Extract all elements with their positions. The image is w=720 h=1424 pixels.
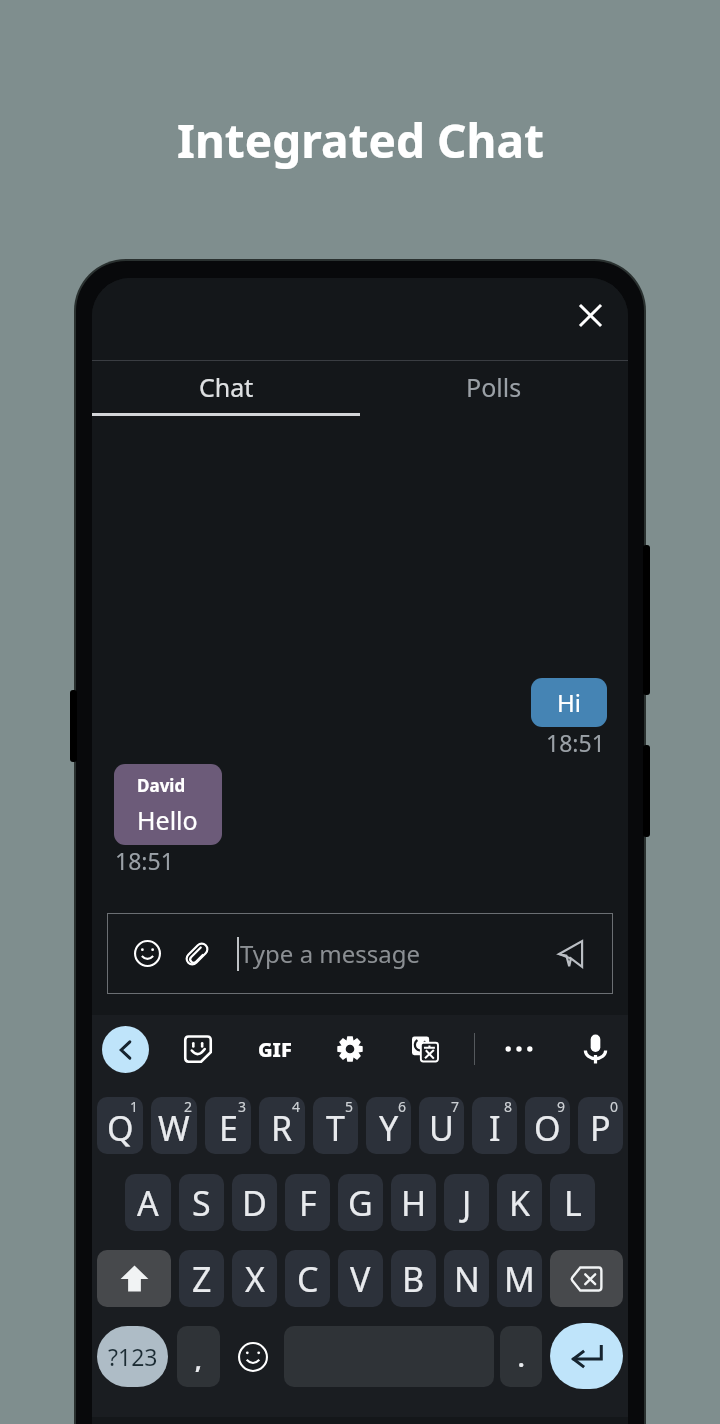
button[interactable]: X — [232, 1250, 277, 1307]
button[interactable]: U — [419, 1097, 464, 1154]
staticText: D — [242, 1180, 267, 1226]
button[interactable]: More options — [493, 1023, 545, 1075]
button[interactable]: R — [259, 1097, 305, 1154]
button[interactable]: S — [179, 1174, 224, 1231]
staticText: 8 — [504, 1097, 513, 1116]
staticText: 9 — [557, 1097, 566, 1116]
button[interactable]: B — [391, 1250, 436, 1307]
button[interactable]: Shift — [97, 1250, 171, 1307]
staticText: S — [192, 1180, 211, 1226]
button[interactable]: Translate — [399, 1023, 451, 1075]
button[interactable]: Backspace — [550, 1250, 623, 1307]
button[interactable]: Stickers — [172, 1023, 224, 1075]
staticText: Type a message — [240, 937, 421, 970]
staticText: J — [462, 1180, 472, 1226]
button[interactable]: Z — [179, 1250, 224, 1307]
staticText: U — [429, 1105, 454, 1151]
staticText: ?123 — [108, 1341, 158, 1372]
button[interactable]: H — [391, 1174, 436, 1231]
staticText: 1 — [130, 1097, 139, 1116]
staticText: 0 — [610, 1097, 619, 1116]
button[interactable]: Close — [566, 291, 614, 339]
button[interactable]: Back — [99, 1023, 151, 1075]
button[interactable]: J — [444, 1174, 489, 1231]
staticText: 18:51 — [546, 727, 605, 758]
button[interactable]: Enter — [550, 1323, 623, 1389]
staticText: GIF — [258, 1036, 292, 1063]
button[interactable]: V — [338, 1250, 383, 1307]
button[interactable]: F — [285, 1174, 330, 1231]
staticText: Chat — [199, 370, 254, 404]
staticText: 4 — [292, 1097, 301, 1116]
button[interactable]: N — [444, 1250, 489, 1307]
staticText: 18:51 — [115, 845, 174, 876]
staticText: E — [219, 1105, 238, 1151]
staticText: P — [590, 1105, 611, 1151]
button[interactable]: C — [285, 1250, 330, 1307]
button[interactable]: ?123 — [97, 1326, 168, 1387]
staticText: H — [401, 1180, 427, 1226]
button[interactable]: Hi — [531, 678, 607, 727]
button[interactable]: L — [550, 1174, 595, 1231]
staticText: O — [534, 1105, 561, 1151]
staticText: X — [245, 1256, 265, 1302]
button[interactable]: Voice input — [569, 1023, 621, 1075]
button[interactable]: T — [313, 1097, 358, 1154]
button[interactable]: Settings — [324, 1023, 376, 1075]
staticText: 6 — [398, 1097, 407, 1116]
button[interactable]: . — [500, 1326, 542, 1387]
staticText: W — [158, 1105, 190, 1151]
staticText: I — [489, 1105, 501, 1151]
staticText: T — [326, 1105, 345, 1151]
button[interactable]: D — [232, 1174, 277, 1231]
staticText: Z — [192, 1256, 212, 1302]
staticText: N — [454, 1256, 480, 1302]
staticText: K — [509, 1180, 531, 1226]
staticText: B — [402, 1256, 425, 1302]
button[interactable]: I — [472, 1097, 517, 1154]
staticText: 2 — [184, 1097, 193, 1116]
staticText: , — [195, 1344, 202, 1375]
button[interactable]: Type a message — [107, 913, 613, 994]
button[interactable]: David — [114, 764, 222, 845]
button[interactable]: E — [205, 1097, 251, 1154]
staticText: 7 — [451, 1097, 460, 1116]
staticText: Y — [379, 1105, 399, 1151]
staticText: Polls — [466, 370, 522, 404]
button[interactable]: Polls — [360, 361, 628, 416]
button[interactable]: M — [497, 1250, 542, 1307]
staticText: David — [137, 774, 186, 797]
staticText: 3 — [238, 1097, 247, 1116]
button[interactable]: K — [497, 1174, 542, 1231]
staticText: M — [504, 1256, 535, 1302]
button[interactable]: O — [525, 1097, 570, 1154]
staticText: Hi — [557, 686, 581, 719]
button[interactable]: GIF — [249, 1023, 301, 1075]
button[interactable]: P — [578, 1097, 623, 1154]
button[interactable]: W — [151, 1097, 197, 1154]
staticText: F — [299, 1180, 317, 1226]
staticText: R — [271, 1105, 293, 1151]
staticText: . — [518, 1342, 525, 1373]
staticText: Hello — [137, 803, 198, 837]
button[interactable]: Y — [366, 1097, 411, 1154]
button[interactable]: Emoji — [229, 1326, 277, 1387]
button[interactable]: G — [338, 1174, 383, 1231]
staticText: V — [350, 1256, 371, 1302]
staticText: Q — [107, 1105, 134, 1151]
staticText: L — [564, 1180, 582, 1226]
staticText: Integrated Chat — [177, 109, 544, 172]
staticText: A — [137, 1180, 159, 1226]
button[interactable]: , — [177, 1326, 220, 1387]
button[interactable]: Chat — [92, 361, 360, 416]
button[interactable]: A — [125, 1174, 171, 1231]
staticText: 5 — [345, 1097, 354, 1116]
staticText: C — [297, 1256, 319, 1302]
button[interactable]: Q — [97, 1097, 143, 1154]
staticText: G — [348, 1180, 373, 1226]
